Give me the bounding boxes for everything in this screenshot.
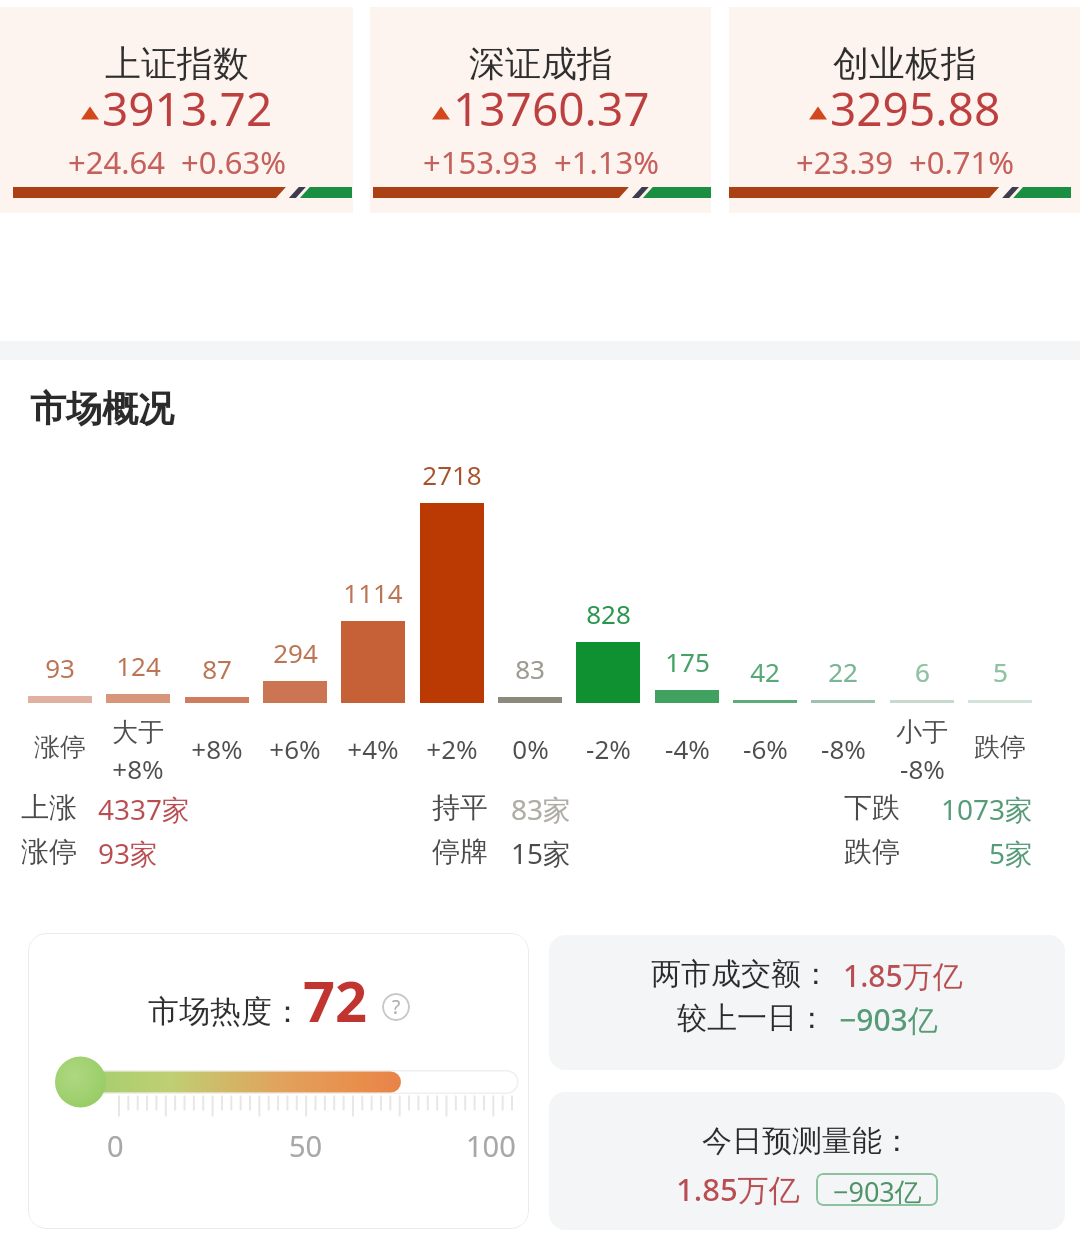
staticText: -6% [743,731,788,766]
button[interactable]: 今日预测量能： [549,1092,1065,1230]
staticText: 87 [202,651,232,686]
staticText: 3295.88 [830,77,1001,140]
staticText: 下跌 [844,790,900,825]
other: 帮助 [382,993,410,1021]
staticText: +153.93 [423,141,538,183]
staticText: +24.64 [68,141,165,183]
staticText: 涨停 [21,834,77,869]
staticText: +8% [112,751,164,786]
staticText: 4337家 [98,790,191,828]
staticText: 294 [273,635,318,670]
staticText: ? [392,994,401,1020]
staticText: 上涨 [21,790,77,825]
staticText: +0.63% [181,141,286,183]
button[interactable]: -4% [648,440,726,770]
staticText: 3913.72 [102,77,273,140]
staticText: +1.13% [554,141,659,183]
staticText: 今日预测量能： [702,1122,912,1160]
button[interactable]: -2% [569,440,647,770]
button[interactable]: 市场热度： [28,933,529,1229]
staticText: 83 [515,651,545,686]
staticText: 创业板指 [833,41,977,86]
staticText: 93家 [98,834,159,872]
staticText: -8% [821,731,866,766]
staticText: 6 [915,654,930,689]
button[interactable]: 涨停 [21,440,99,770]
staticText: +2% [426,731,478,766]
staticText: 涨停 [34,731,86,764]
staticText: 较上一日： [677,999,827,1037]
staticText: 175 [665,644,710,679]
button[interactable]: 大于+8% [99,440,177,770]
staticText: +23.39 [796,141,893,183]
staticText: 22 [828,654,858,689]
staticText: 跌停 [844,834,900,869]
button[interactable]: 跌停 [961,440,1039,770]
staticText: 5家 [844,834,1033,872]
staticText: 跌停 [974,731,1026,764]
button[interactable]: 0% [491,440,569,770]
button[interactable]: -8% [804,440,882,770]
staticText: 上证指数 [105,41,249,86]
button[interactable]: 深证成指 [370,0,711,213]
staticText: 5 [993,654,1008,689]
staticText: 市场热度： [148,992,303,1031]
staticText: 大于 [112,716,164,749]
button[interactable]: +2% [413,440,491,770]
staticText: 1114 [343,575,403,610]
staticText: 1.85万亿 [676,1168,800,1210]
staticText: -4% [665,731,710,766]
staticText: 0% [512,731,549,766]
staticText: 83家 [511,790,572,828]
staticText: 持平 [432,790,488,825]
staticText: 15家 [511,834,572,872]
staticText: +4% [347,731,399,766]
button[interactable]: 上证指数 [0,0,353,213]
button[interactable]: 两市成交额： [549,935,1065,1070]
staticText: 50 [289,1126,323,1165]
staticText: 124 [116,648,161,683]
staticText: 828 [586,596,631,631]
staticText: 两市成交额： [651,955,831,993]
staticText: 停牌 [432,834,488,869]
button[interactable]: +6% [256,440,334,770]
staticText: -2% [586,731,631,766]
staticText: -8% [900,751,945,786]
staticText: +8% [191,731,243,766]
staticText: −903亿 [839,999,938,1040]
staticText: 13760.37 [453,77,650,140]
staticText: 93 [45,650,75,685]
button[interactable]: +4% [334,440,412,770]
staticText: −903亿 [833,1173,922,1206]
staticText: +0.71% [909,141,1014,183]
staticText: 2718 [422,457,482,492]
staticText: 100 [466,1126,516,1165]
staticText: 72 [303,962,368,1038]
button[interactable]: 小于-8% [883,440,961,770]
staticText: 0 [107,1126,124,1165]
staticText: +6% [269,731,321,766]
staticText: 深证成指 [469,41,613,86]
button[interactable]: +8% [178,440,256,770]
staticText: 1073家 [844,790,1033,828]
staticText: 小于 [896,716,948,749]
staticText: 42 [750,654,780,689]
staticText: 市场概况 [30,386,174,431]
staticText: 1.85万亿 [843,955,963,996]
button[interactable]: 创业板指 [729,0,1080,213]
button[interactable]: -6% [726,440,804,770]
